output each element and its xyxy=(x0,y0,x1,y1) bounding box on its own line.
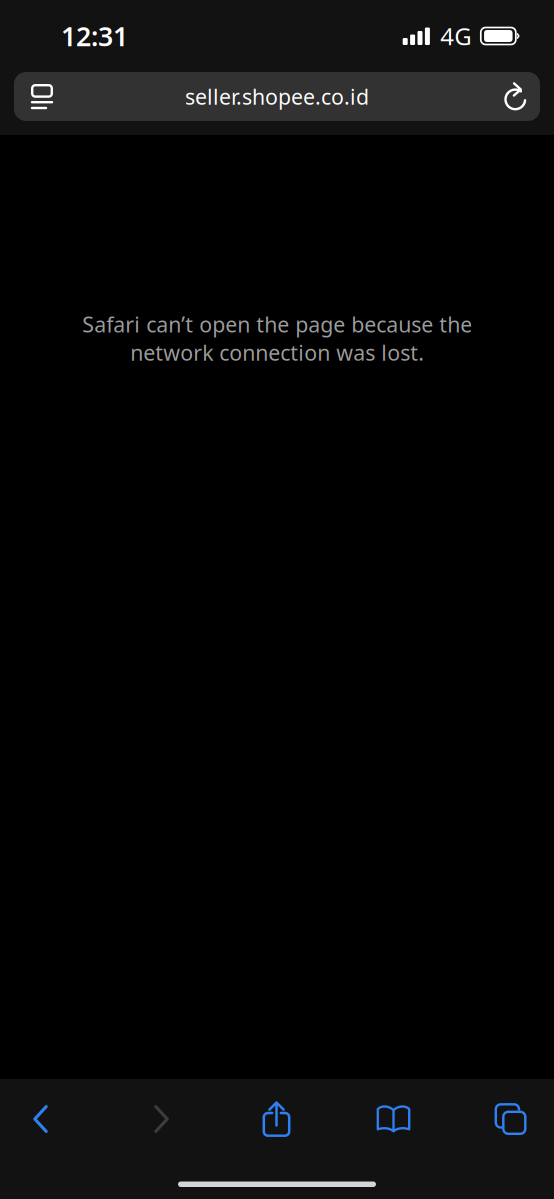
button[interactable]: Share xyxy=(235,1088,317,1150)
staticText: 4G xyxy=(440,20,471,52)
button[interactable]: Back xyxy=(0,1088,81,1150)
button[interactable]: Reload xyxy=(494,72,538,121)
staticText: 12:31 xyxy=(61,18,128,54)
button[interactable]: Forward xyxy=(120,1088,202,1150)
button[interactable]: Page settings xyxy=(20,72,64,121)
staticText: Safari can’t open the page because the n… xyxy=(82,310,472,367)
button[interactable]: Tabs xyxy=(469,1088,551,1150)
button[interactable]: Bookmarks xyxy=(352,1088,434,1150)
staticText: seller.shopee.co.id xyxy=(185,82,369,111)
